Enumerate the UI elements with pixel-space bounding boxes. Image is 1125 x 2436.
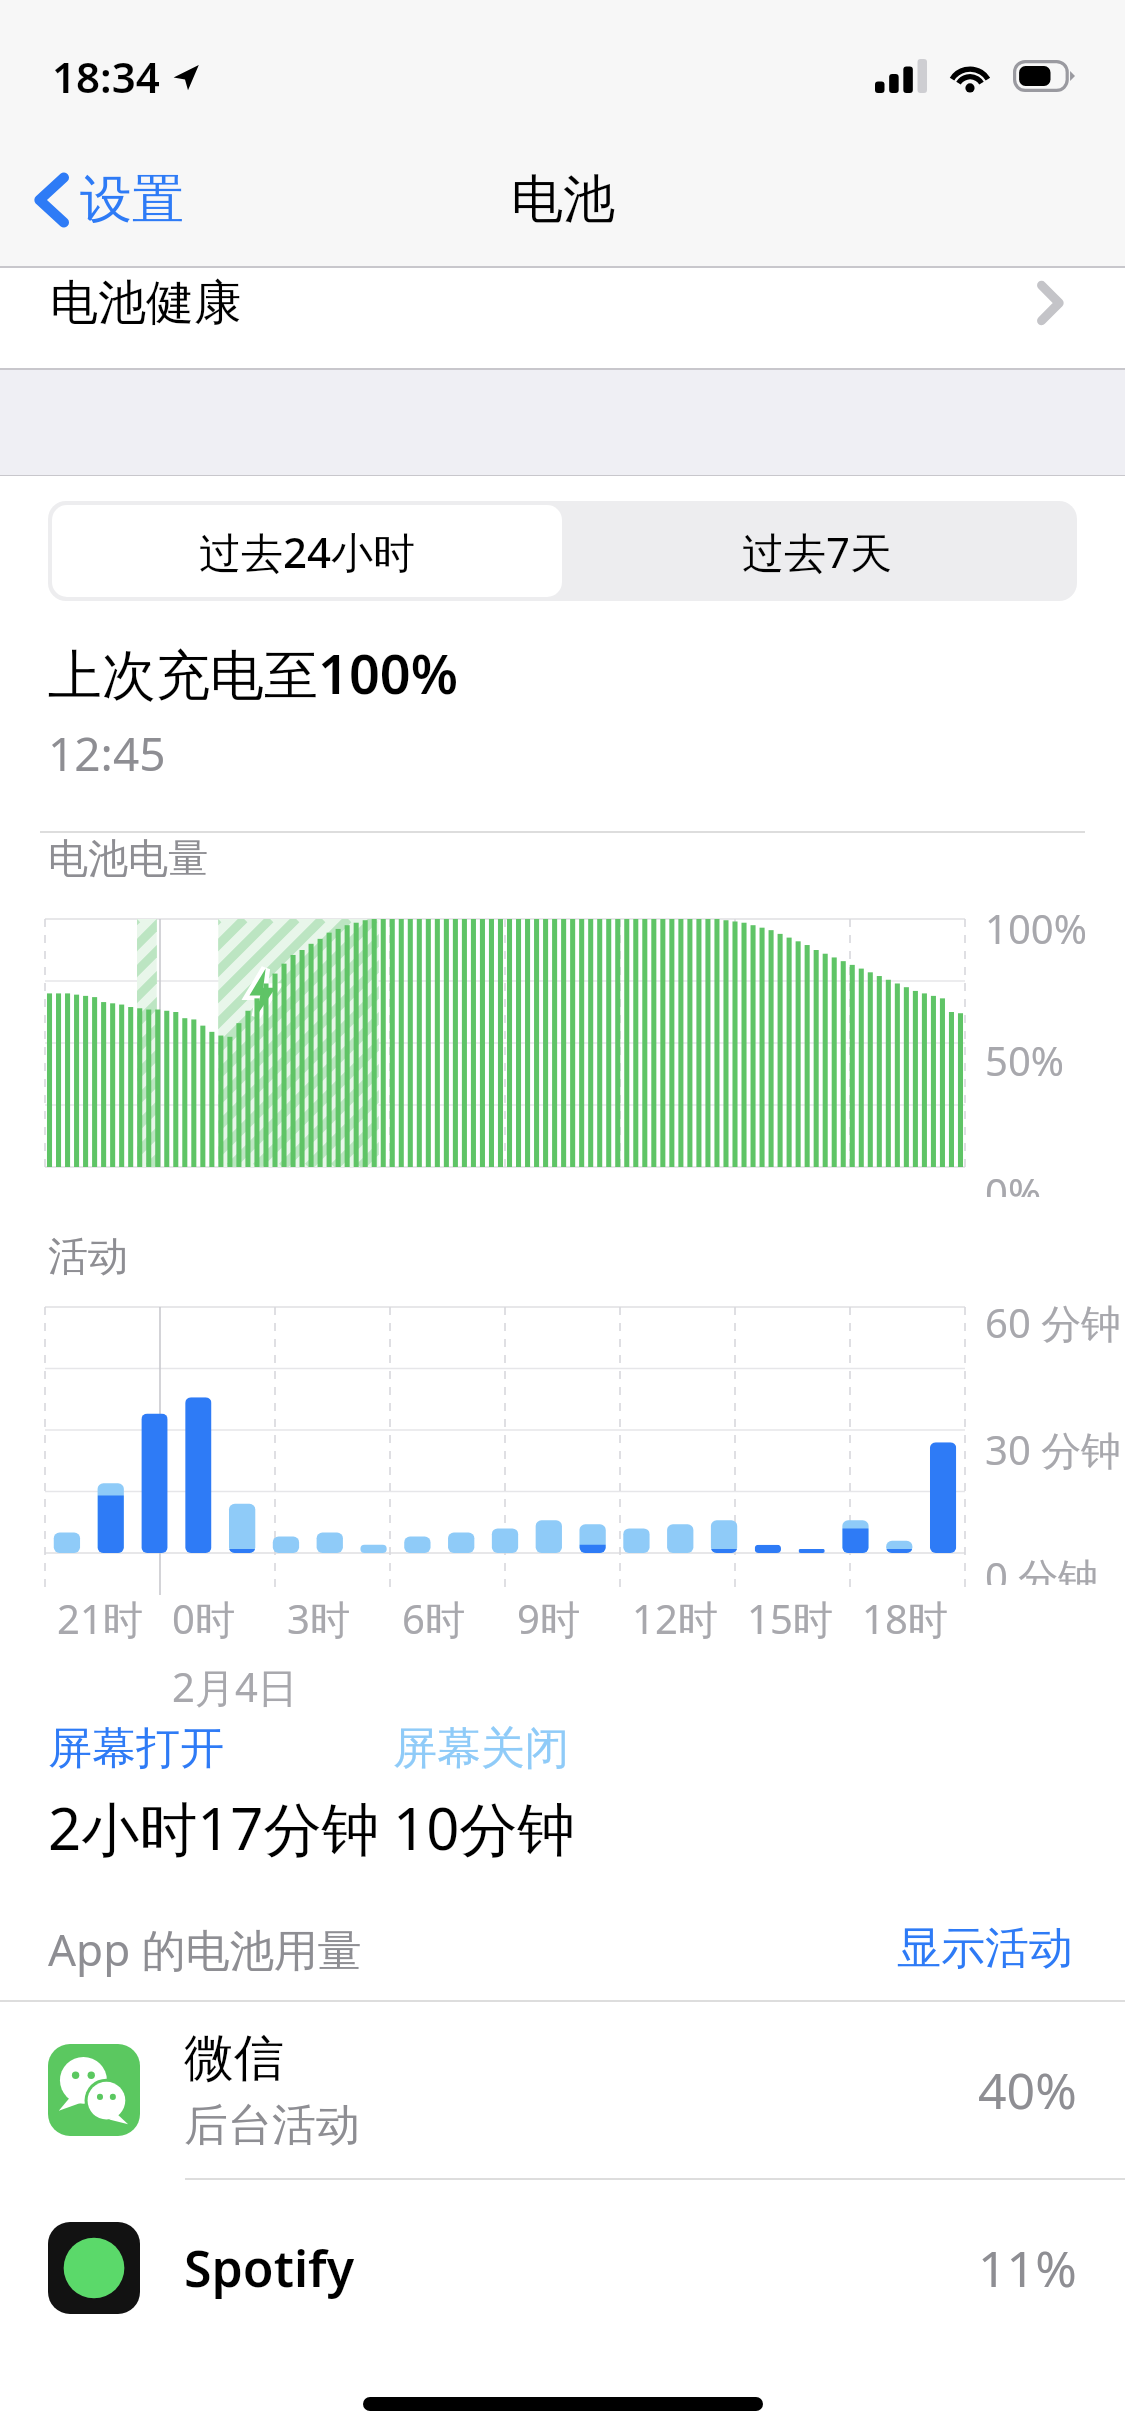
staticText: Spotify	[184, 2234, 355, 2302]
button[interactable]: 过去24小时	[52, 505, 562, 597]
staticText: 电池健康	[50, 273, 242, 333]
staticText: 显示活动	[897, 1921, 1073, 1976]
staticText: 屏幕关闭	[393, 1721, 569, 1776]
button[interactable]: 微信	[0, 2002, 1125, 2178]
staticText: 设置	[80, 167, 184, 233]
staticText: 2小时17分钟	[48, 1788, 380, 1867]
staticText: 电池电量	[48, 833, 208, 883]
staticText: 电池	[511, 167, 615, 233]
button[interactable]: 设置	[0, 153, 200, 247]
staticText: 11%	[978, 2234, 1077, 2302]
staticText: App 的电池用量	[48, 1919, 362, 1979]
staticText: 30 分钟	[985, 1422, 1122, 1477]
staticText: 屏幕打开	[48, 1721, 224, 1776]
staticText: 21时	[57, 1591, 143, 1646]
button[interactable]: 显示活动	[893, 1917, 1077, 1980]
staticText: 12时	[632, 1591, 718, 1646]
staticText: 3时	[287, 1591, 350, 1646]
staticText: 过去7天	[742, 523, 893, 580]
staticText: 6时	[402, 1591, 465, 1646]
staticText: 15时	[747, 1591, 833, 1646]
staticText: 18时	[862, 1591, 948, 1646]
staticText: 100%	[985, 901, 1087, 955]
button[interactable]: 过去7天	[562, 505, 1073, 597]
staticText: 40%	[978, 2056, 1077, 2124]
staticText: 过去24小时	[199, 523, 416, 580]
staticText: 18:34	[52, 48, 160, 105]
button[interactable]: Spotify	[0, 2180, 1125, 2356]
staticText: 上次充电至100%	[48, 636, 458, 710]
staticText: 2月4日	[172, 1659, 298, 1714]
button[interactable]: 电池健康	[0, 268, 1125, 370]
staticText: 60 分钟	[985, 1295, 1122, 1350]
staticText: 0%	[985, 1165, 1042, 1197]
staticText: 50%	[985, 1033, 1064, 1087]
staticText: 0 分钟	[985, 1549, 1099, 1585]
staticText: 后台活动	[184, 2098, 360, 2153]
staticText: 10分钟	[393, 1788, 576, 1867]
staticText: 9时	[517, 1591, 580, 1646]
staticText: 0时	[172, 1591, 235, 1646]
staticText: 12:45	[48, 722, 166, 785]
staticText: 微信	[184, 2027, 284, 2090]
staticText: 活动	[48, 1231, 128, 1281]
